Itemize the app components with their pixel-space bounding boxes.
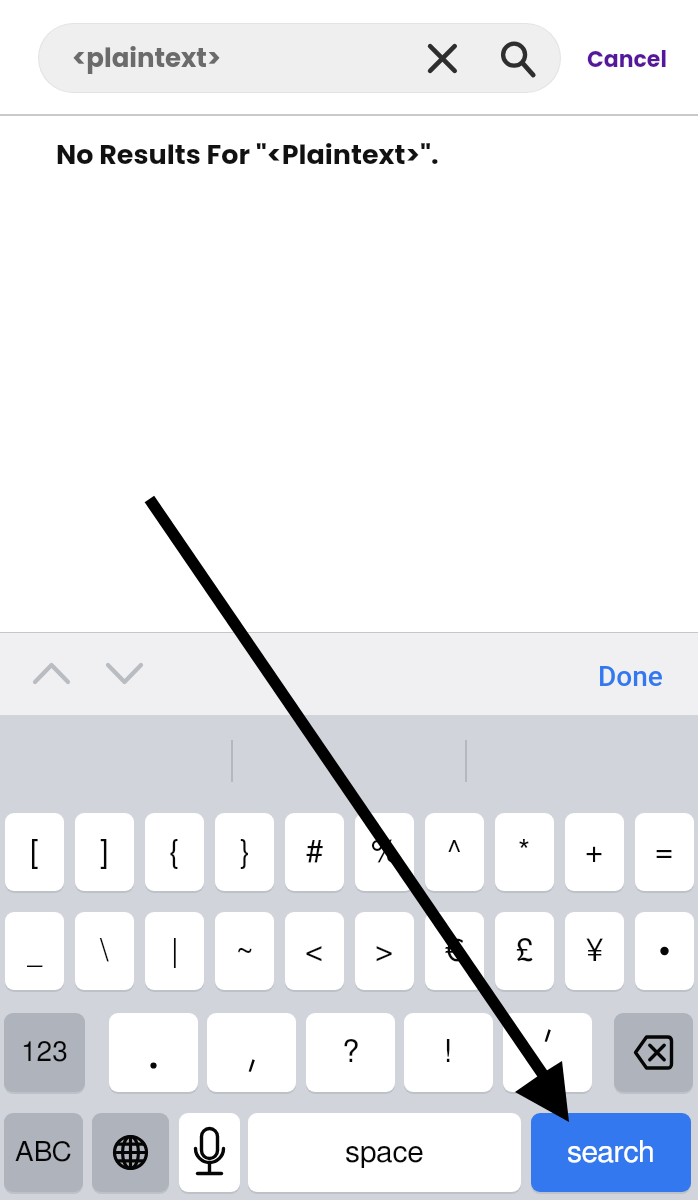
button[interactable]: ?: [306, 1013, 395, 1092]
button[interactable]: _: [5, 912, 64, 990]
staticText: <plaintext>: [72, 40, 221, 76]
button[interactable]: Middle dot: [635, 912, 694, 990]
staticText: {: [169, 837, 180, 868]
button[interactable]: Previous field: [17, 645, 86, 702]
button[interactable]: *: [495, 813, 554, 891]
staticText: £: [516, 936, 534, 967]
staticText: space: [345, 1138, 424, 1168]
staticText: search: [567, 1138, 655, 1168]
button[interactable]: <plaintext>: [38, 23, 561, 93]
button[interactable]: Clear search: [418, 34, 467, 83]
staticText: \: [100, 936, 109, 967]
button[interactable]: 123: [4, 1013, 85, 1092]
button[interactable]: ^: [425, 813, 484, 891]
staticText: €: [444, 936, 465, 967]
button[interactable]: Period: [109, 1013, 198, 1092]
button[interactable]: Apostrophe: [503, 1013, 592, 1092]
staticText: ]: [100, 837, 109, 868]
staticText: ~: [237, 936, 253, 967]
button[interactable]: <: [285, 912, 344, 990]
button[interactable]: [: [5, 813, 64, 891]
button[interactable]: |: [145, 912, 204, 990]
button[interactable]: +: [565, 813, 624, 891]
staticText: }: [239, 837, 250, 868]
staticText: No Results For "<Plaintext>".: [56, 136, 439, 174]
button[interactable]: space: [248, 1113, 521, 1192]
button[interactable]: \: [75, 912, 134, 990]
staticText: ^: [447, 837, 462, 868]
button[interactable]: Dictate: [179, 1113, 240, 1192]
button[interactable]: >: [355, 912, 414, 990]
button[interactable]: !: [404, 1013, 493, 1092]
staticText: =: [655, 837, 674, 868]
staticText: 123: [21, 1039, 68, 1067]
button[interactable]: ¥: [565, 912, 624, 990]
button[interactable]: Comma: [207, 1013, 296, 1092]
button[interactable]: =: [635, 813, 694, 891]
staticText: <: [305, 936, 324, 967]
button[interactable]: }: [215, 813, 274, 891]
button[interactable]: #: [285, 813, 344, 891]
staticText: ?: [342, 1037, 360, 1068]
button[interactable]: Done: [598, 660, 663, 693]
staticText: *: [518, 837, 531, 868]
button[interactable]: Delete: [614, 1013, 693, 1092]
button[interactable]: €: [425, 912, 484, 990]
button[interactable]: ~: [215, 912, 274, 990]
staticText: ABC: [15, 1139, 72, 1167]
button[interactable]: {: [145, 813, 204, 891]
staticText: _: [27, 936, 43, 967]
button[interactable]: £: [495, 912, 554, 990]
button[interactable]: %: [355, 813, 414, 891]
staticText: >: [375, 936, 394, 967]
button[interactable]: ABC: [4, 1113, 83, 1192]
staticText: |: [171, 936, 179, 967]
button[interactable]: Next field: [91, 645, 158, 702]
button[interactable]: Change keyboard: [92, 1113, 169, 1192]
button[interactable]: ]: [75, 813, 134, 891]
button[interactable]: Cancel: [587, 44, 667, 75]
staticText: %: [371, 837, 399, 868]
staticText: +: [585, 837, 604, 868]
staticText: !: [443, 1037, 454, 1068]
staticText: [: [30, 837, 39, 868]
button[interactable]: Search: [491, 31, 541, 81]
staticText: #: [306, 837, 324, 868]
button[interactable]: search: [531, 1113, 691, 1192]
staticText: ¥: [586, 936, 604, 967]
